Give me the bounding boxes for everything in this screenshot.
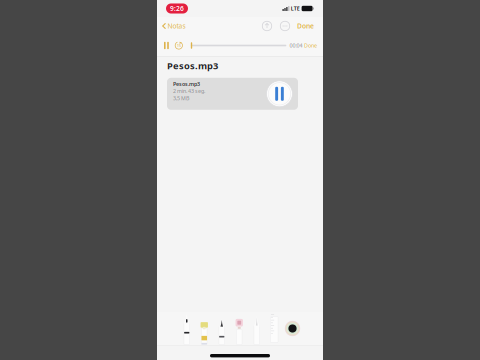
staticText: 9:26	[170, 4, 184, 13]
button[interactable]: Ruler	[265, 312, 283, 344]
button[interactable]: Share	[258, 18, 276, 34]
staticText: 2 min. 43 seg.	[173, 87, 205, 95]
staticText: 00:04	[289, 42, 302, 49]
button[interactable]: More	[276, 18, 294, 34]
button[interactable]: Pause	[157, 39, 173, 52]
staticText: Pesos.mp3	[167, 59, 218, 72]
button[interactable]: Done	[294, 17, 323, 35]
button[interactable]: Notas	[157, 17, 185, 35]
button[interactable]: Pause	[266, 81, 298, 107]
button[interactable]: Eraser	[230, 312, 248, 344]
staticText: Notas	[167, 22, 185, 30]
button[interactable]: Pen	[178, 312, 195, 344]
staticText: Done	[297, 22, 314, 30]
staticText: Done	[304, 42, 317, 49]
button[interactable]: Highlighter	[195, 312, 213, 344]
staticText: 3,5 MB	[173, 95, 189, 102]
button[interactable]: Skip back 15 seconds	[173, 38, 185, 52]
staticText: LTE	[291, 5, 300, 12]
button[interactable]: Colour	[283, 312, 302, 344]
button[interactable]: Pencil	[213, 312, 230, 344]
staticText: 15	[177, 43, 181, 48]
button[interactable]: Done	[302, 38, 323, 53]
staticText: Pesos.mp3	[173, 80, 200, 87]
